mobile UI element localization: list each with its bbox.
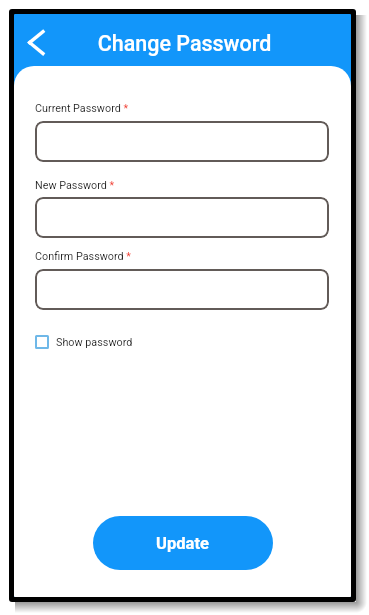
- button[interactable]: [35, 197, 329, 238]
- staticText: Confirm Password *: [35, 250, 131, 263]
- button[interactable]: [35, 269, 329, 310]
- staticText: Update: [156, 534, 210, 553]
- staticText: Change Password: [16, 31, 351, 56]
- button[interactable]: Show password: [35, 335, 133, 349]
- button[interactable]: Update: [93, 516, 273, 570]
- staticText: Current Password *: [35, 102, 129, 115]
- staticText: Show password: [56, 336, 133, 349]
- staticText: New Password *: [35, 179, 115, 192]
- button[interactable]: [35, 121, 329, 162]
- button[interactable]: Back: [24, 28, 54, 58]
